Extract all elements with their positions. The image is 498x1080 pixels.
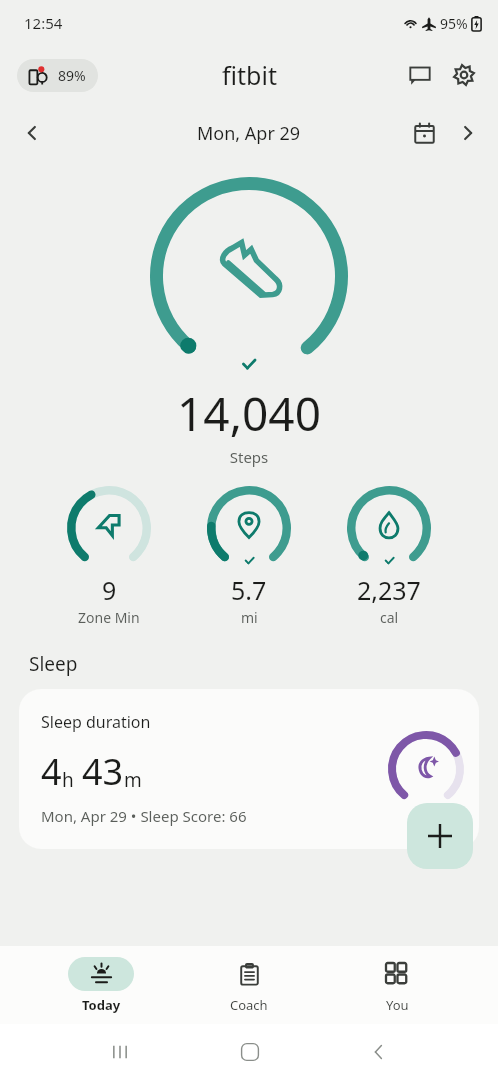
button[interactable]: Calendar xyxy=(402,111,446,155)
staticText: Coach xyxy=(230,996,268,1014)
staticText: Mon, Apr 29 • Sleep Score: 66 xyxy=(41,806,247,826)
button[interactable]: Coach xyxy=(202,953,296,1018)
button[interactable]: Next day xyxy=(446,111,490,155)
staticText: 14,040 xyxy=(0,382,498,445)
button[interactable]: Settings xyxy=(442,53,486,97)
staticText: mi xyxy=(241,608,258,627)
button[interactable]: Sleep duration xyxy=(19,689,479,849)
staticText: cal xyxy=(380,608,399,627)
button[interactable]: Steps 14,040 xyxy=(149,176,349,376)
staticText: 5.7 xyxy=(231,573,267,607)
staticText: 95% xyxy=(440,14,468,33)
button[interactable]: You xyxy=(350,953,444,1018)
staticText: 12:54 xyxy=(24,13,63,33)
staticText: 9 xyxy=(102,573,117,607)
button[interactable]: Add xyxy=(407,803,473,869)
staticText: 4 xyxy=(41,747,62,796)
staticText: Mon, Apr 29 xyxy=(197,121,301,146)
staticText: Zone Min xyxy=(78,608,140,627)
staticText: 43 xyxy=(82,747,124,796)
button[interactable]: 5.7 xyxy=(200,485,298,627)
button[interactable]: 9 xyxy=(60,485,158,627)
staticText: h xyxy=(62,767,74,793)
button[interactable]: Today xyxy=(54,953,148,1018)
staticText: 2,237 xyxy=(357,573,421,607)
staticText: m xyxy=(124,767,142,793)
staticText: You xyxy=(386,996,409,1014)
staticText: Sleep duration xyxy=(41,711,151,733)
staticText: Steps xyxy=(0,447,498,467)
button[interactable]: Messages xyxy=(398,53,442,97)
staticText: Sleep xyxy=(29,651,78,677)
staticText: Today xyxy=(82,996,121,1014)
staticText: fitbit xyxy=(222,58,277,92)
button[interactable]: Previous day xyxy=(10,111,54,155)
button[interactable]: 89% xyxy=(17,59,98,92)
button[interactable]: 2,237 xyxy=(340,485,438,627)
staticText: 89% xyxy=(58,66,86,85)
